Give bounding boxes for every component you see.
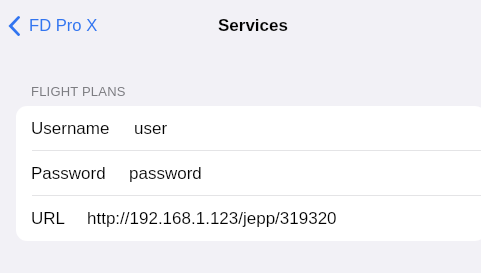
button[interactable]: URL (16, 196, 481, 241)
staticText: user (134, 119, 168, 138)
staticText: URL (31, 209, 66, 228)
other: Back (9, 16, 20, 36)
staticText: http://192.168.1.123/jepp/319320 (87, 209, 337, 228)
staticText: Username (31, 119, 110, 138)
button[interactable]: Back (5, 14, 102, 38)
staticText: password (129, 164, 202, 183)
staticText: FD Pro X (29, 16, 98, 35)
button[interactable]: Username (16, 106, 481, 151)
staticText: Services (218, 16, 288, 35)
staticText: Password (31, 164, 106, 183)
button[interactable]: Password (16, 151, 481, 196)
staticText: FLIGHT PLANS (31, 84, 126, 99)
